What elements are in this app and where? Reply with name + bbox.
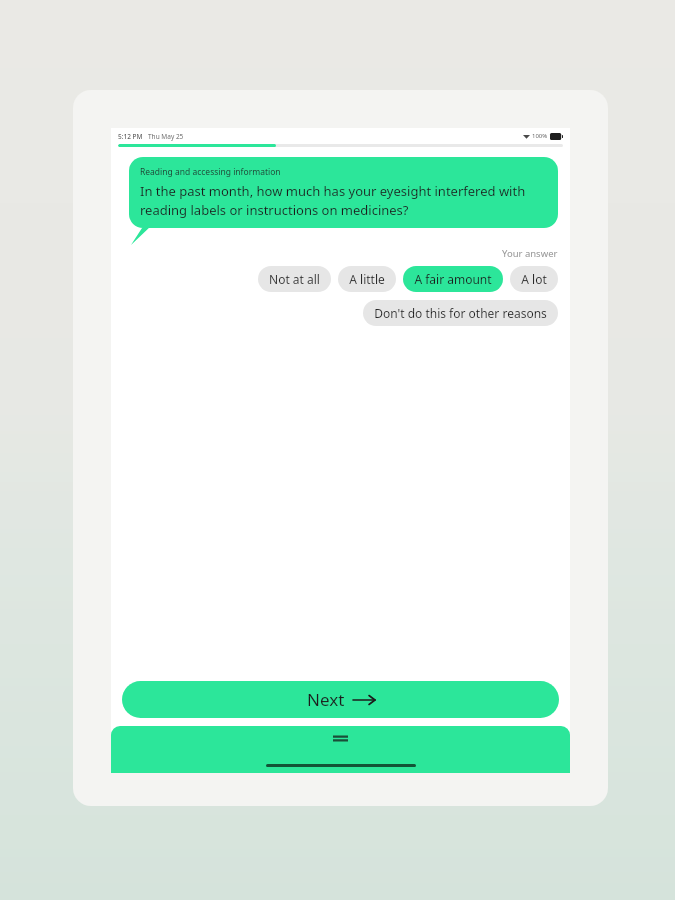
staticText: A lot bbox=[521, 271, 547, 287]
staticText: A fair amount bbox=[414, 271, 492, 287]
button[interactable]: Not at all bbox=[258, 266, 331, 292]
staticText: Thu May 25 bbox=[148, 132, 184, 141]
staticText: Not at all bbox=[269, 271, 320, 287]
button[interactable]: A little bbox=[338, 266, 396, 292]
staticText: 100% bbox=[532, 132, 548, 140]
button[interactable]: A lot bbox=[510, 266, 558, 292]
staticText: In the past month, how much has your eye… bbox=[140, 182, 547, 219]
staticText: Next bbox=[307, 688, 345, 711]
staticText: A little bbox=[349, 271, 385, 287]
button[interactable]: Don't do this for other reasons bbox=[363, 300, 558, 326]
staticText: 5:12 PM bbox=[118, 132, 143, 141]
staticText: Don't do this for other reasons bbox=[374, 305, 547, 321]
button[interactable]: A fair amount bbox=[403, 266, 503, 292]
staticText: Reading and accessing information bbox=[140, 166, 281, 178]
staticText: Your answer bbox=[502, 247, 558, 260]
button[interactable]: Menu bbox=[111, 726, 570, 773]
button[interactable]: Next bbox=[122, 681, 559, 718]
